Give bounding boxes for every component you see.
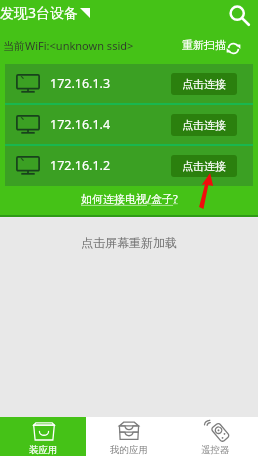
staticText: 发现3台设备	[0, 3, 79, 22]
staticText: 点击连接	[182, 77, 226, 91]
staticText: 点击连接	[182, 118, 226, 132]
staticText: 172.16.1.2	[50, 157, 111, 174]
staticText: 重新扫描	[182, 38, 226, 52]
staticText: 点击连接	[182, 159, 226, 173]
button[interactable]: 点击连接	[171, 155, 237, 177]
staticText: 当前WiFi:<unknown ssid>	[3, 38, 134, 53]
staticText: 遥控器	[201, 444, 230, 456]
staticText: 装应用	[29, 444, 58, 456]
staticText: 我的应用	[110, 444, 148, 456]
staticText: 172.16.1.3	[50, 75, 111, 92]
button[interactable]: 遥控器	[172, 417, 258, 456]
button[interactable]: 点击连接	[171, 114, 237, 136]
staticText: 172.16.1.4	[50, 116, 111, 133]
button[interactable]: 重新扫描	[180, 34, 248, 58]
button[interactable]: 点击连接	[171, 73, 237, 95]
staticText: 点击屏幕重新加载	[81, 235, 177, 250]
button[interactable]: 如何连接电视/盒子?	[81, 191, 178, 206]
button[interactable]: 点击屏幕重新加载	[0, 217, 258, 417]
button[interactable]: 172.16.1.3	[5, 64, 253, 103]
button[interactable]: 装应用	[0, 417, 86, 456]
button[interactable]: 我的应用	[86, 417, 172, 456]
button[interactable]: Search	[222, 0, 258, 32]
button[interactable]: 172.16.1.2	[5, 146, 253, 185]
button[interactable]: 172.16.1.4	[5, 105, 253, 144]
